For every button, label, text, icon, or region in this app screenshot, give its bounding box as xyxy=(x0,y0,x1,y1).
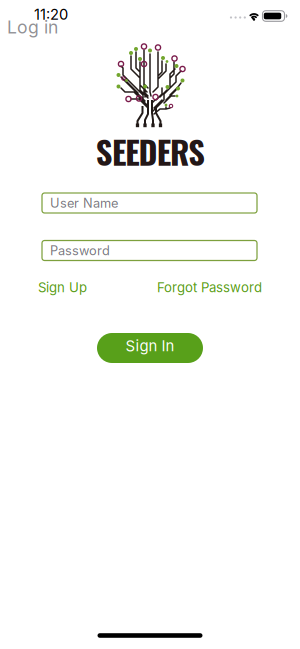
staticText: Password xyxy=(50,243,110,258)
staticText: Sign Up xyxy=(38,279,87,295)
staticText: 11:20 xyxy=(34,6,68,23)
button[interactable]: Password xyxy=(42,240,257,260)
staticText: Log in xyxy=(7,16,58,38)
button[interactable]: Sign Up xyxy=(38,279,87,295)
staticText: User Name xyxy=(50,195,118,211)
button[interactable]: Sign In xyxy=(97,333,203,363)
staticText: Forgot Password xyxy=(157,279,262,295)
button[interactable]: Forgot Password xyxy=(157,279,262,295)
staticText: SEEDERS xyxy=(96,127,205,175)
staticText: Sign In xyxy=(125,337,174,355)
button[interactable]: User Name xyxy=(42,193,257,213)
